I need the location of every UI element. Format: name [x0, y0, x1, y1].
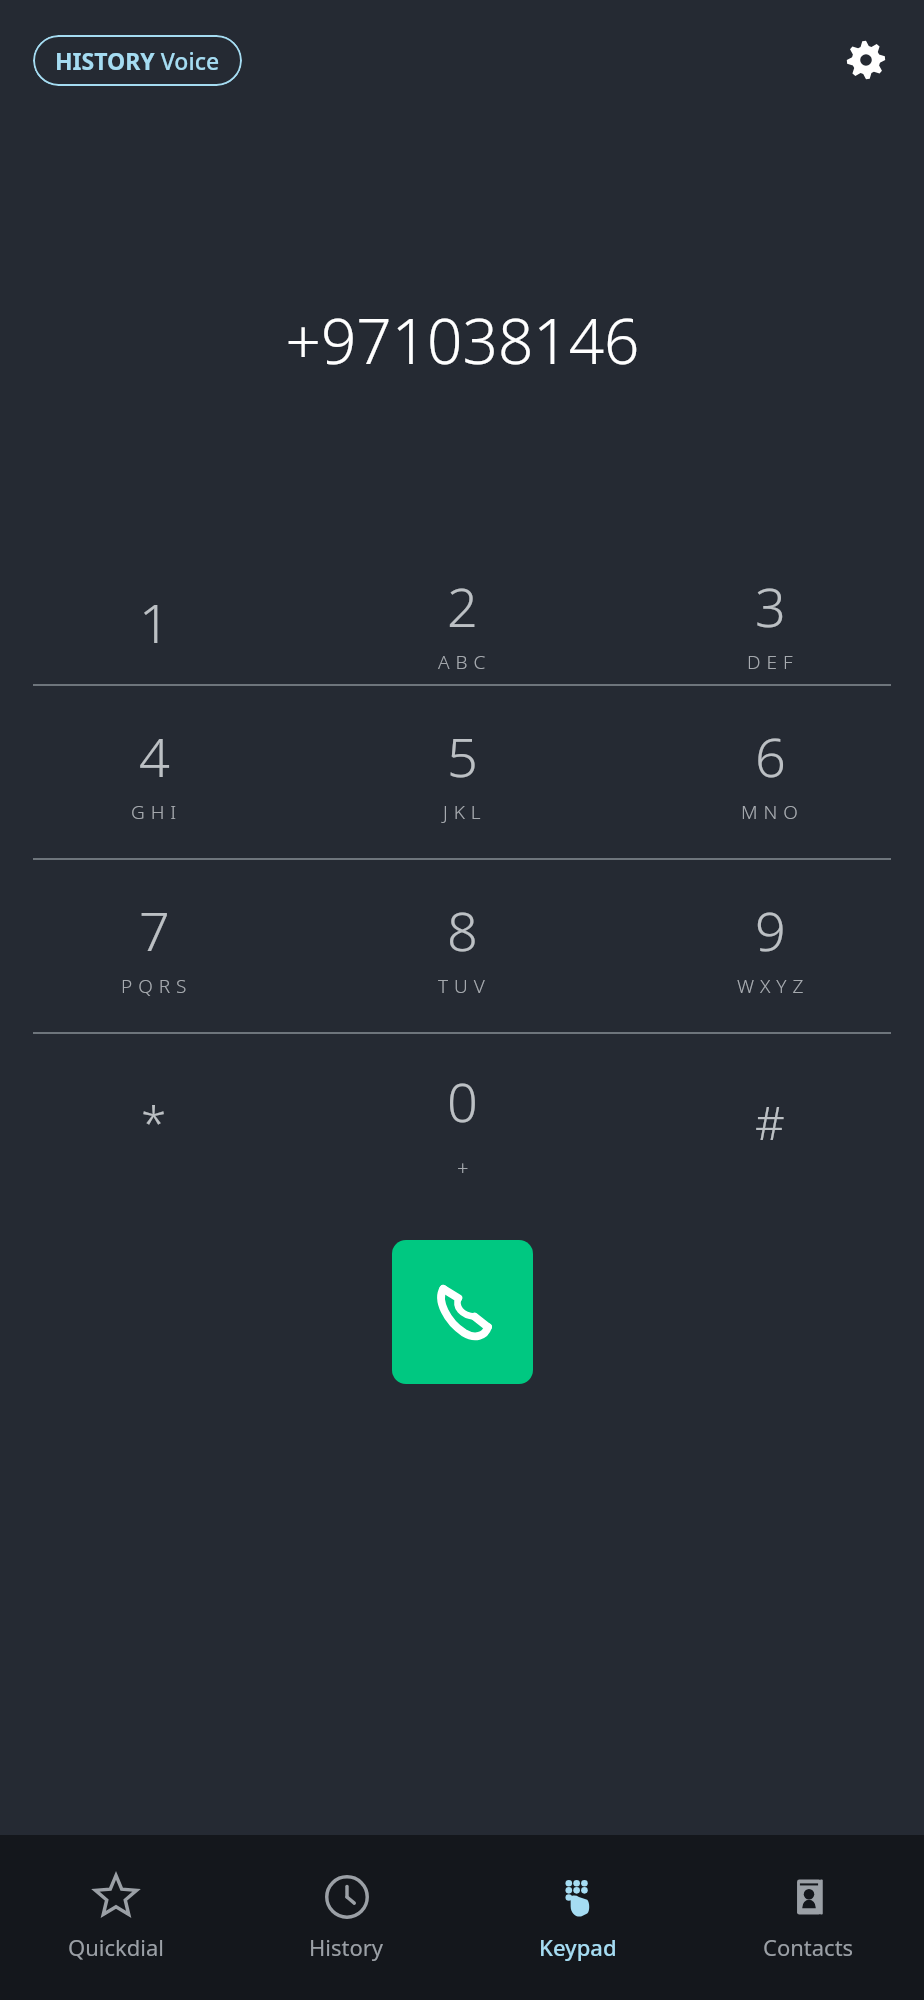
staticText: HISTORY Voice — [55, 45, 220, 76]
staticText: A B C — [438, 649, 486, 675]
button[interactable]: 7 — [0, 860, 308, 1032]
button[interactable]: 5 — [308, 686, 616, 858]
staticText: History — [309, 1932, 384, 1962]
staticText: 8 — [447, 893, 478, 967]
button[interactable]: Call — [392, 1240, 533, 1384]
button[interactable]: Settings — [834, 28, 898, 92]
staticText: T U V — [438, 973, 486, 999]
button[interactable]: Keypad — [462, 1835, 693, 2000]
button[interactable]: HISTORY Voice — [33, 35, 242, 86]
button[interactable]: History — [231, 1835, 462, 2000]
staticText: 1 — [139, 585, 170, 659]
staticText: +971038146 — [285, 298, 640, 382]
staticText: D E F — [747, 649, 793, 675]
staticText: 2 — [447, 569, 478, 643]
staticText: 0 — [447, 1064, 478, 1138]
button[interactable]: Quickdial — [0, 1835, 231, 2000]
staticText: J K L — [443, 799, 482, 825]
button[interactable]: 8 — [308, 860, 616, 1032]
staticText: M N O — [741, 799, 799, 825]
staticText: Keypad — [539, 1932, 617, 1962]
button[interactable]: # — [616, 1034, 924, 1210]
button[interactable]: 0 — [308, 1034, 616, 1210]
staticText: * — [141, 1091, 167, 1154]
staticText: 4 — [139, 719, 170, 793]
staticText: # — [755, 1091, 785, 1154]
staticText: + — [457, 1154, 469, 1181]
staticText: Contacts — [763, 1932, 854, 1962]
button[interactable]: 9 — [616, 860, 924, 1032]
button[interactable]: Contacts — [693, 1835, 924, 2000]
button[interactable]: 6 — [616, 686, 924, 858]
staticText: W X Y Z — [737, 973, 804, 999]
staticText: 3 — [755, 569, 786, 643]
staticText: G H I — [131, 799, 177, 825]
button[interactable]: 4 — [0, 686, 308, 858]
staticText: 5 — [447, 719, 478, 793]
staticText: 9 — [755, 893, 786, 967]
button[interactable]: * — [0, 1034, 308, 1210]
staticText: 7 — [139, 893, 170, 967]
staticText: P Q R S — [121, 973, 187, 999]
button[interactable]: 2 — [308, 560, 616, 684]
staticText: Quickdial — [68, 1932, 164, 1962]
button[interactable]: 1 — [0, 560, 308, 684]
staticText: 6 — [755, 719, 786, 793]
button[interactable]: 3 — [616, 560, 924, 684]
